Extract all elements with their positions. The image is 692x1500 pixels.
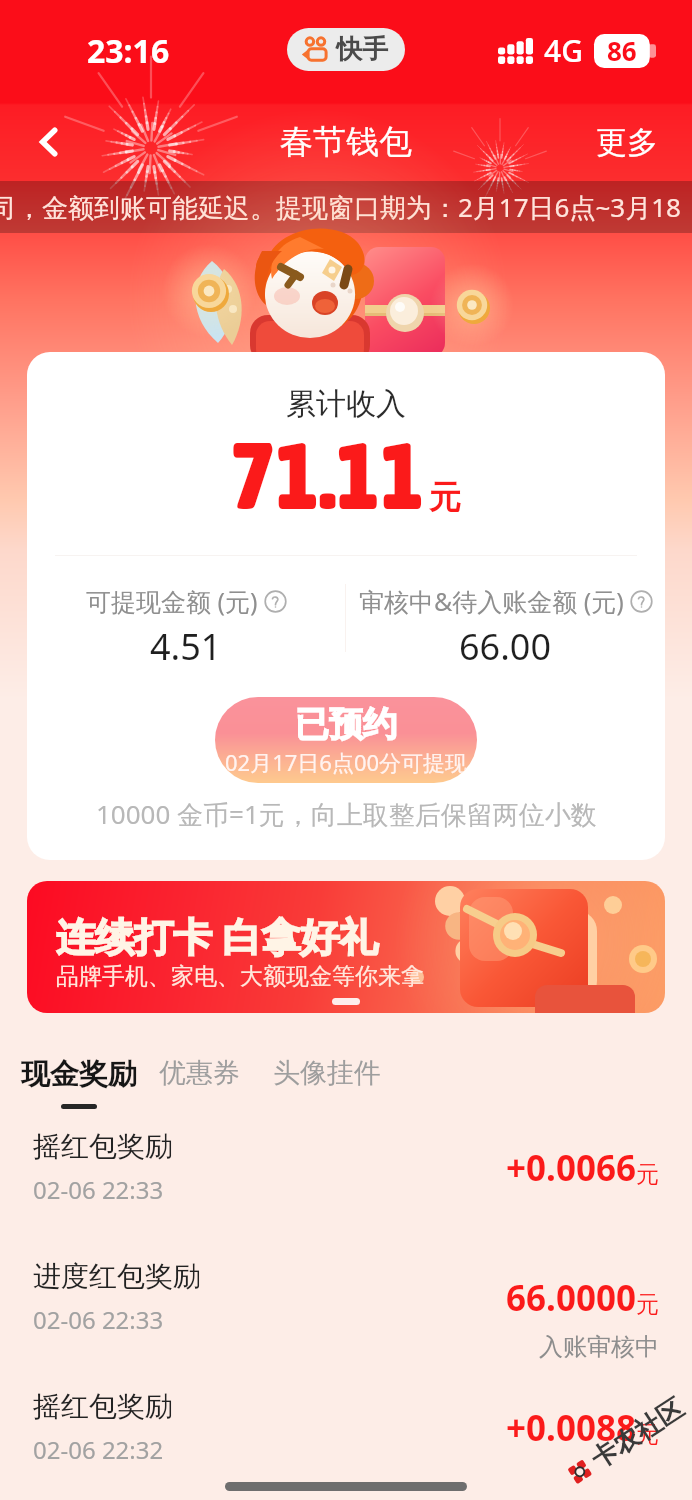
button[interactable]: 进度红包奖励 — [0, 1239, 692, 1369]
staticText: 66.00 — [459, 622, 552, 671]
staticText: 品牌手机、家电、大额现金等你来拿 — [56, 962, 424, 991]
staticText: 4G — [544, 30, 583, 71]
staticText: 02月17日6点00分可提现 — [225, 747, 468, 777]
staticText: 23:16 — [87, 29, 170, 73]
staticText: 元 — [636, 1290, 659, 1319]
staticText: 可提现金额 (元) — [86, 584, 258, 618]
staticText: 审核中&待入账金额 (元) — [359, 584, 624, 618]
button[interactable]: 摇红包奖励 — [0, 1369, 692, 1499]
staticText: 10000 金币=1元，向上取整后保留两位小数 — [96, 796, 597, 832]
button[interactable]: 更多 — [566, 109, 692, 176]
staticText: +0.0066 — [506, 1144, 636, 1192]
button[interactable]: 摇红包奖励 — [0, 1109, 692, 1239]
button[interactable]: 连续打卡 白拿好礼 — [27, 881, 665, 1013]
staticText: 66.0000 — [506, 1274, 636, 1322]
staticText: 02-06 22:32 — [33, 1433, 164, 1466]
staticText: 优惠券 — [159, 1056, 240, 1090]
staticText: 摇红包奖励 — [33, 1129, 173, 1164]
staticText: 02-06 22:33 — [33, 1303, 164, 1336]
staticText: 累计收入 — [286, 385, 406, 423]
staticText: 元 — [636, 1160, 659, 1189]
staticText: 入账审核中 — [539, 1332, 659, 1362]
staticText: 春节钱包 — [280, 121, 412, 163]
staticText: 卡农社区 — [585, 1392, 690, 1476]
staticText: 71.11 — [231, 421, 425, 529]
button[interactable]: Back — [18, 111, 80, 173]
staticText: 4.51 — [150, 622, 222, 671]
staticText: 摇红包奖励 — [33, 1389, 173, 1424]
button[interactable]: 头像挂件 — [273, 1056, 381, 1090]
button[interactable]: 已预约 — [215, 697, 477, 783]
staticText: 司，金额到账可能延迟。提现窗口期为：2月17日6点~3月18日24 — [0, 189, 682, 225]
staticText: 元 — [636, 1420, 659, 1449]
staticText: 进度红包奖励 — [33, 1259, 201, 1294]
staticText: +0.0088 — [506, 1404, 636, 1452]
button[interactable]: 优惠券 — [159, 1056, 240, 1090]
staticText: 元 — [429, 477, 461, 517]
staticText: 86 — [607, 33, 637, 68]
staticText: 连续打卡 白拿好礼 — [56, 909, 379, 962]
staticText: 现金奖励 — [21, 1056, 137, 1093]
staticText: 头像挂件 — [273, 1056, 381, 1090]
staticText: 更多 — [596, 123, 658, 162]
button[interactable]: 现金奖励 — [21, 1056, 137, 1109]
staticText: 快手 — [336, 33, 388, 66]
staticText: 02-06 22:33 — [33, 1173, 164, 1206]
staticText: 已预约 — [295, 703, 397, 746]
